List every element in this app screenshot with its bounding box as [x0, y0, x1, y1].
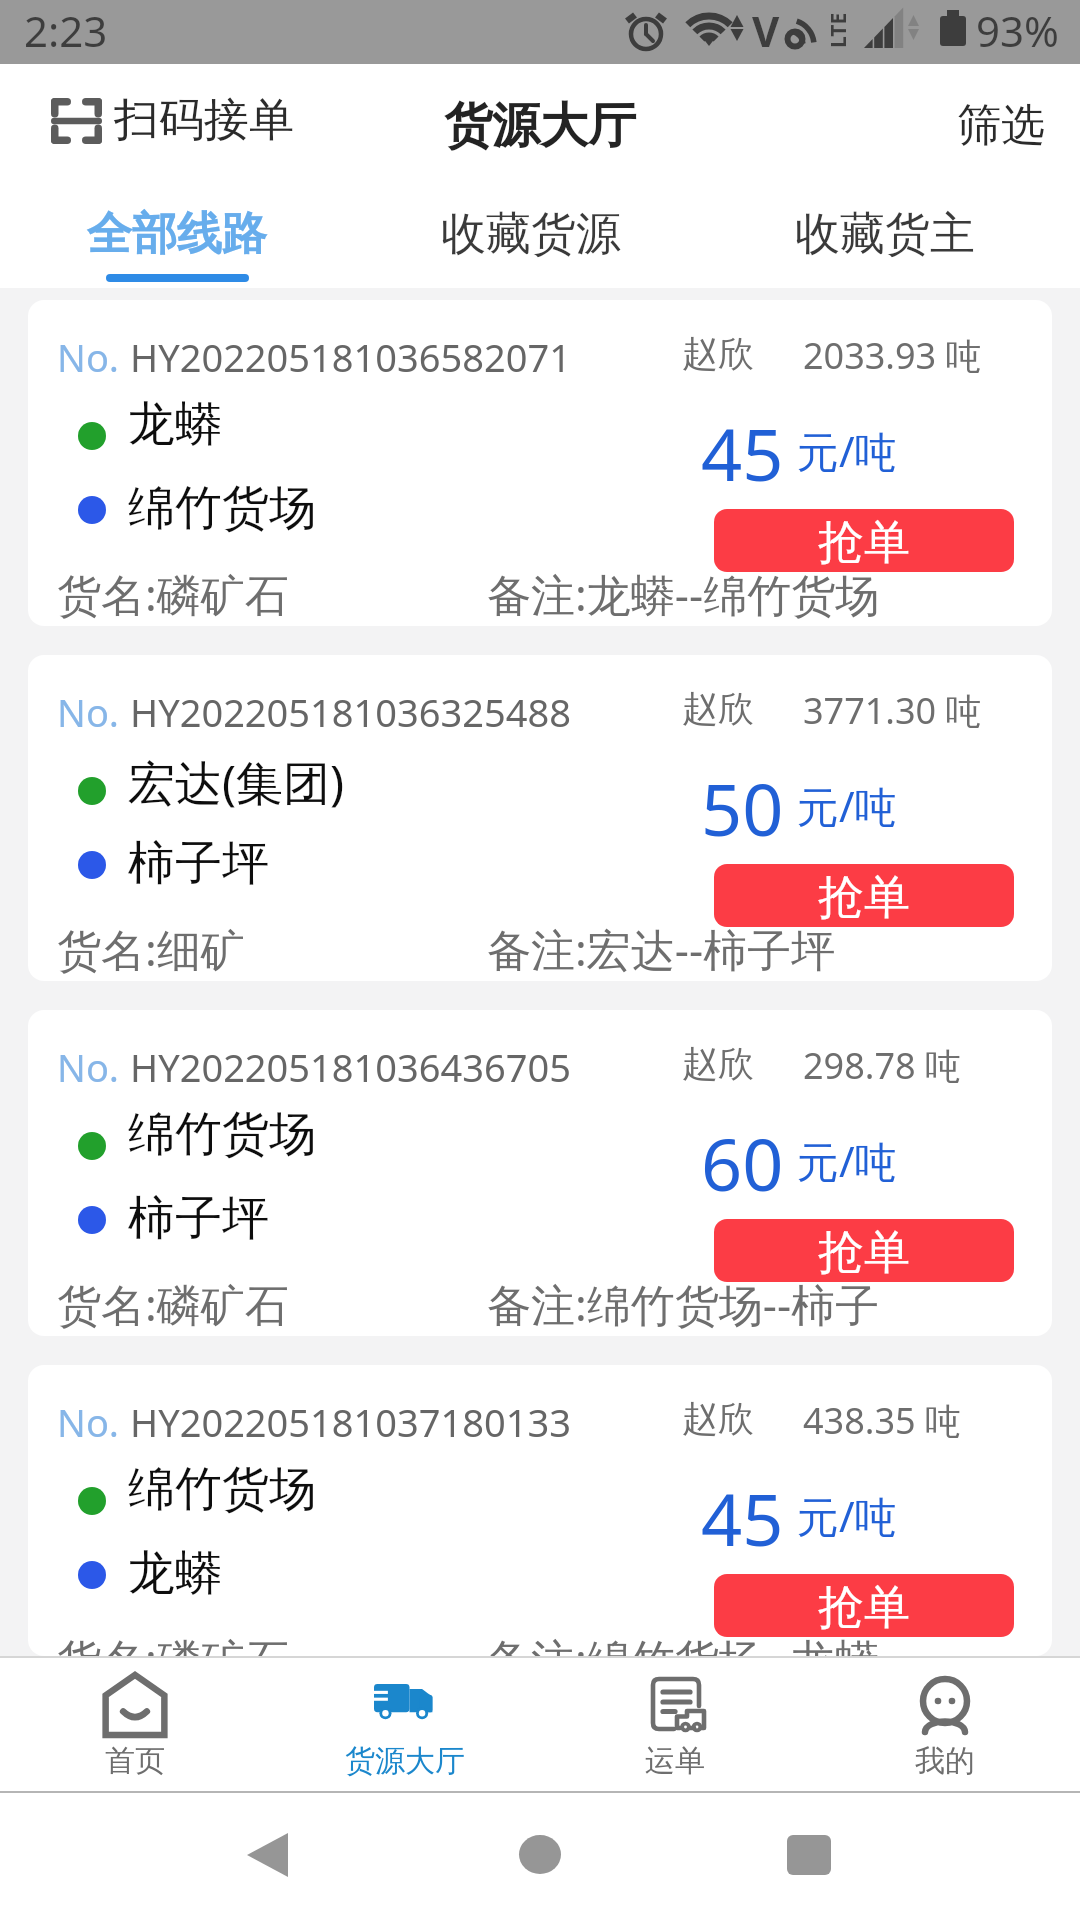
staticText: No.: [57, 331, 120, 383]
staticText: 货源大厅: [345, 1742, 465, 1780]
staticText: HY202205181036325488: [130, 686, 571, 738]
button[interactable]: 首页: [0, 1658, 270, 1791]
staticText: 绵竹货场: [128, 1105, 316, 1164]
button[interactable]: 运单: [540, 1658, 810, 1791]
button[interactable]: 扫码接单: [51, 92, 294, 149]
staticText: 45: [701, 404, 784, 502]
button[interactable]: No.: [28, 655, 1052, 981]
staticText: 2033.93 吨: [803, 331, 982, 380]
button[interactable]: No.: [28, 1010, 1052, 1336]
staticText: 柿子坪: [128, 834, 269, 893]
button[interactable]: 我的: [810, 1658, 1080, 1791]
staticText: 元/吨: [797, 777, 897, 834]
button[interactable]: 收藏货源: [354, 178, 708, 288]
staticText: 宏达(集团): [128, 750, 345, 814]
button[interactable]: 筛选: [957, 98, 1045, 153]
staticText: 抢单: [818, 1579, 910, 1637]
staticText: No.: [57, 1041, 120, 1093]
staticText: 45: [701, 1469, 784, 1567]
staticText: No.: [57, 686, 120, 738]
staticText: 抢单: [818, 1224, 910, 1282]
staticText: 备注:宏达--柿子坪: [487, 919, 836, 979]
staticText: 赵欣: [682, 1041, 754, 1086]
staticText: 298.78 吨: [803, 1041, 961, 1090]
staticText: 抢单: [818, 869, 910, 927]
staticText: 全部线路: [87, 206, 267, 263]
button[interactable]: 抢单: [714, 1574, 1014, 1637]
staticText: 赵欣: [682, 1396, 754, 1441]
staticText: V: [752, 2, 780, 59]
button[interactable]: 抢单: [714, 864, 1014, 927]
staticText: 抢单: [818, 514, 910, 572]
staticText: 备注:龙蟒--绵竹货场: [487, 564, 880, 624]
staticText: 元/吨: [797, 422, 897, 479]
staticText: 元/吨: [797, 1132, 897, 1189]
button[interactable]: Home: [492, 1819, 588, 1889]
button[interactable]: Back: [220, 1819, 316, 1889]
button[interactable]: 抢单: [714, 509, 1014, 572]
staticText: HY202205181037180133: [130, 1396, 571, 1448]
staticText: 元/吨: [797, 1487, 897, 1544]
button[interactable]: Recents: [762, 1819, 858, 1889]
button[interactable]: No.: [28, 300, 1052, 626]
staticText: 货名:磷矿石: [57, 1629, 289, 1656]
button[interactable]: 抢单: [714, 1219, 1014, 1282]
staticText: 收藏货主: [795, 206, 975, 263]
staticText: HY202205181036582071: [130, 331, 571, 383]
staticText: 龙蟒: [128, 1544, 222, 1603]
staticText: 收藏货源: [441, 206, 621, 263]
staticText: HY202205181036436705: [130, 1041, 571, 1093]
staticText: LTE: [824, 12, 853, 48]
staticText: 3771.30 吨: [803, 686, 982, 735]
staticText: 货名:细矿: [57, 919, 245, 979]
staticText: 绵竹货场: [128, 479, 316, 538]
staticText: 货名:磷矿石: [57, 564, 289, 624]
staticText: 赵欣: [682, 686, 754, 731]
staticText: 首页: [105, 1742, 165, 1780]
staticText: 运单: [645, 1742, 705, 1780]
staticText: 备注:绵竹货场--龙蟒: [487, 1629, 880, 1656]
staticText: 93%: [976, 2, 1059, 59]
button[interactable]: 货源大厅: [270, 1658, 540, 1791]
staticText: 60: [701, 1114, 784, 1212]
staticText: 柿子坪: [128, 1189, 269, 1248]
staticText: 货名:磷矿石: [57, 1274, 289, 1334]
staticText: 绵竹货场: [128, 1460, 316, 1519]
staticText: 赵欣: [682, 331, 754, 376]
staticText: 2:23: [24, 2, 108, 59]
staticText: 备注:绵竹货场--柿子: [487, 1274, 880, 1334]
button[interactable]: No.: [28, 1365, 1052, 1656]
staticText: 我的: [915, 1742, 975, 1780]
staticText: No.: [57, 1396, 120, 1448]
button[interactable]: 收藏货主: [708, 178, 1062, 288]
staticText: 龙蟒: [128, 395, 222, 454]
staticText: 438.35 吨: [803, 1396, 961, 1445]
staticText: 货源大厅: [444, 96, 636, 156]
staticText: 扫码接单: [114, 92, 294, 149]
button[interactable]: 全部线路: [0, 178, 354, 288]
staticText: 50: [701, 759, 784, 857]
